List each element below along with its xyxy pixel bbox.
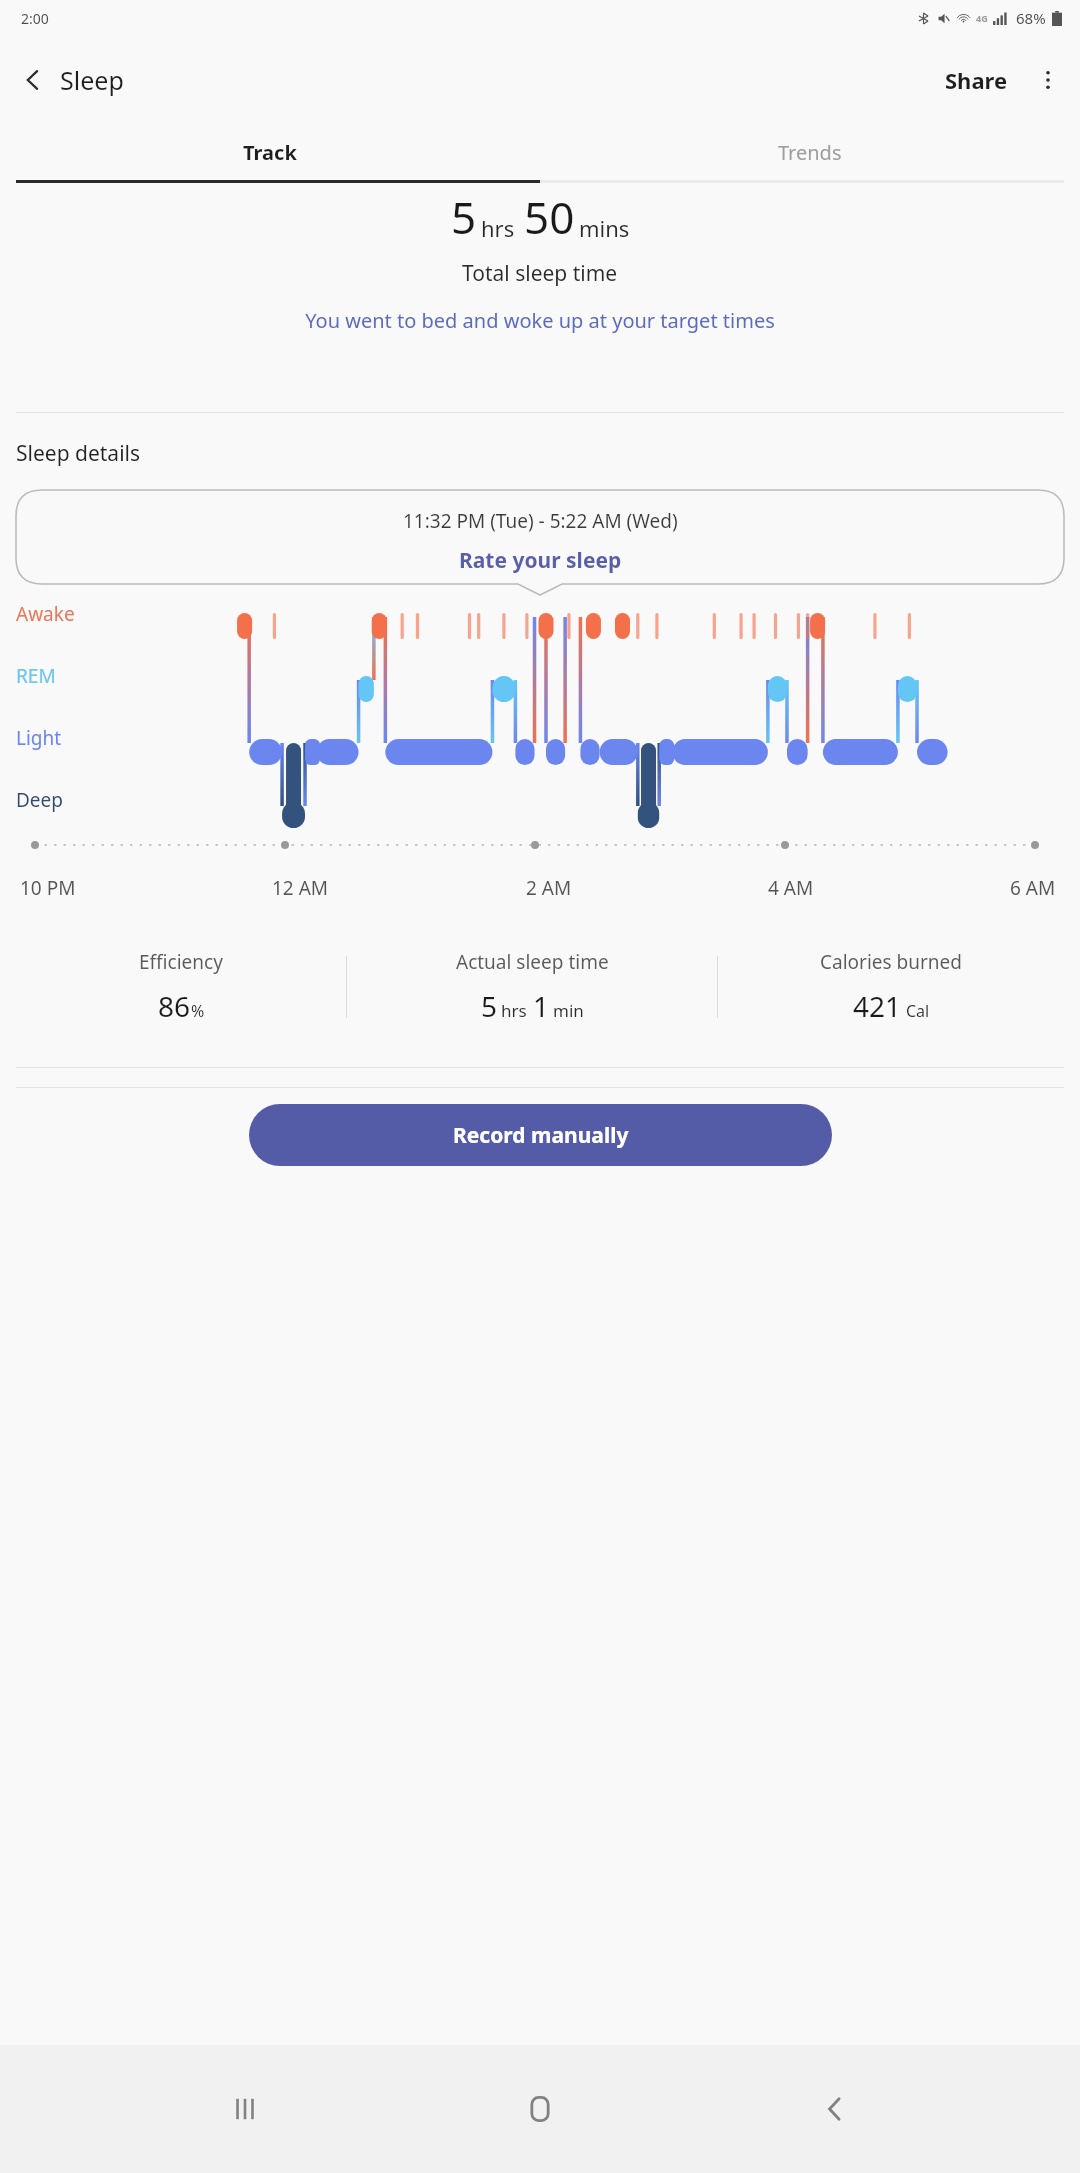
staticText: Awake [16, 601, 75, 627]
staticText: Deep [16, 787, 63, 813]
staticText: mins [579, 213, 630, 243]
staticText: Total sleep time [462, 259, 618, 288]
staticText: 68% [1016, 8, 1046, 28]
staticText: Actual sleep time [456, 949, 609, 975]
button[interactable]: Recent apps [195, 2059, 295, 2159]
staticText: 5 [481, 987, 498, 1025]
staticText: Share [945, 65, 1008, 95]
button[interactable]: Rate your sleep [451, 544, 630, 577]
staticText: Trends [778, 139, 842, 166]
staticText: Efficiency [139, 949, 223, 975]
staticText: 4G [976, 12, 988, 24]
button[interactable]: Calories burned [718, 937, 1064, 1037]
staticText: 6 AM [1010, 875, 1056, 901]
staticText: Light [16, 725, 62, 751]
other: Back [20, 67, 46, 93]
button[interactable]: Trends [540, 124, 1080, 180]
button[interactable]: Track [0, 124, 540, 180]
staticText: Calories burned [820, 949, 962, 975]
button[interactable]: Actual sleep time [347, 937, 717, 1037]
staticText: 1 [533, 987, 550, 1025]
staticText: Track [243, 139, 297, 166]
staticText: REM [16, 663, 56, 689]
staticText: min [553, 999, 584, 1022]
button[interactable]: More options [1026, 58, 1070, 102]
staticText: 5 [451, 187, 477, 247]
staticText: % [191, 1000, 205, 1022]
staticText: 11:32 PM (Tue) - 5:22 AM (Wed) [403, 508, 678, 534]
staticText: 4 AM [768, 875, 814, 901]
button[interactable]: Efficiency [16, 937, 346, 1037]
staticText: Rate your sleep [459, 546, 622, 575]
staticText: hrs [501, 999, 527, 1022]
staticText: 2:00 [21, 9, 49, 28]
staticText: Record manually [453, 1121, 629, 1150]
button[interactable]: Back [785, 2059, 885, 2159]
staticText: 421 [853, 987, 902, 1025]
staticText: Sleep details [16, 439, 141, 468]
staticText: 2 AM [526, 875, 572, 901]
button[interactable]: Home [490, 2059, 590, 2159]
staticText: 86 [158, 987, 191, 1025]
staticText: hrs [481, 213, 515, 243]
staticText: Sleep [60, 63, 124, 97]
staticText: 10 PM [20, 875, 76, 901]
staticText: You went to bed and woke up at your targ… [305, 307, 775, 334]
button[interactable]: Share [935, 57, 1018, 103]
staticText: Cal [906, 1000, 930, 1022]
staticText: 50 [524, 187, 575, 247]
button[interactable]: Back [8, 55, 136, 105]
button[interactable]: Record manually [249, 1104, 832, 1166]
staticText: 12 AM [272, 875, 329, 901]
